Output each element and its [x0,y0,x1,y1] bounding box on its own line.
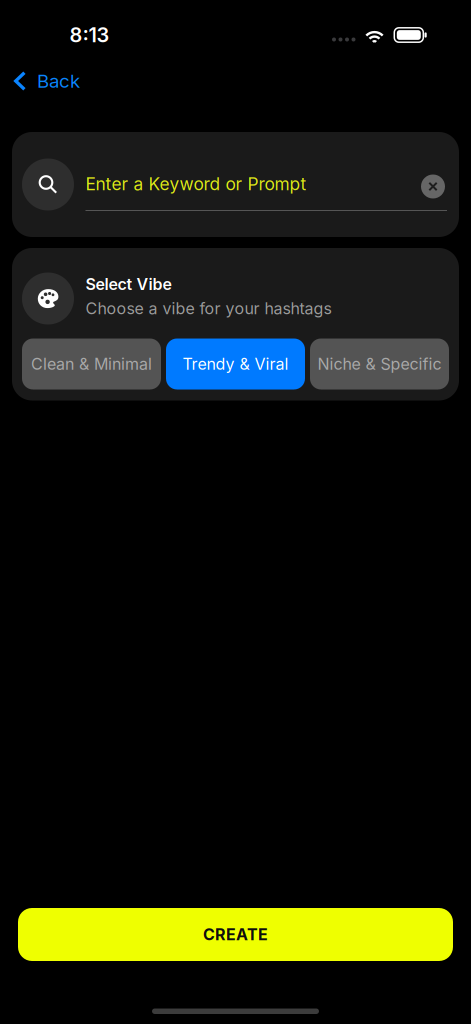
button[interactable]: Niche & Specific [310,338,449,389]
staticText: 8:13 [69,23,109,47]
staticText: Select Vibe [85,274,171,294]
staticText: Back [37,70,80,92]
staticText: Enter a Keyword or Prompt [85,173,306,194]
staticText: Choose a vibe for your hashtags [85,299,331,318]
staticText: Niche & Specific [317,354,441,374]
button[interactable]: CREATE [18,908,453,961]
staticText: CREATE [203,925,268,944]
button[interactable]: Clean & Minimal [22,338,161,389]
button[interactable]: Back [0,62,90,100]
button[interactable]: Trendy & Viral [166,338,305,389]
staticText: Clean & Minimal [31,354,152,374]
button[interactable]: Clear search field [421,174,445,198]
staticText: Trendy & Viral [182,354,288,374]
